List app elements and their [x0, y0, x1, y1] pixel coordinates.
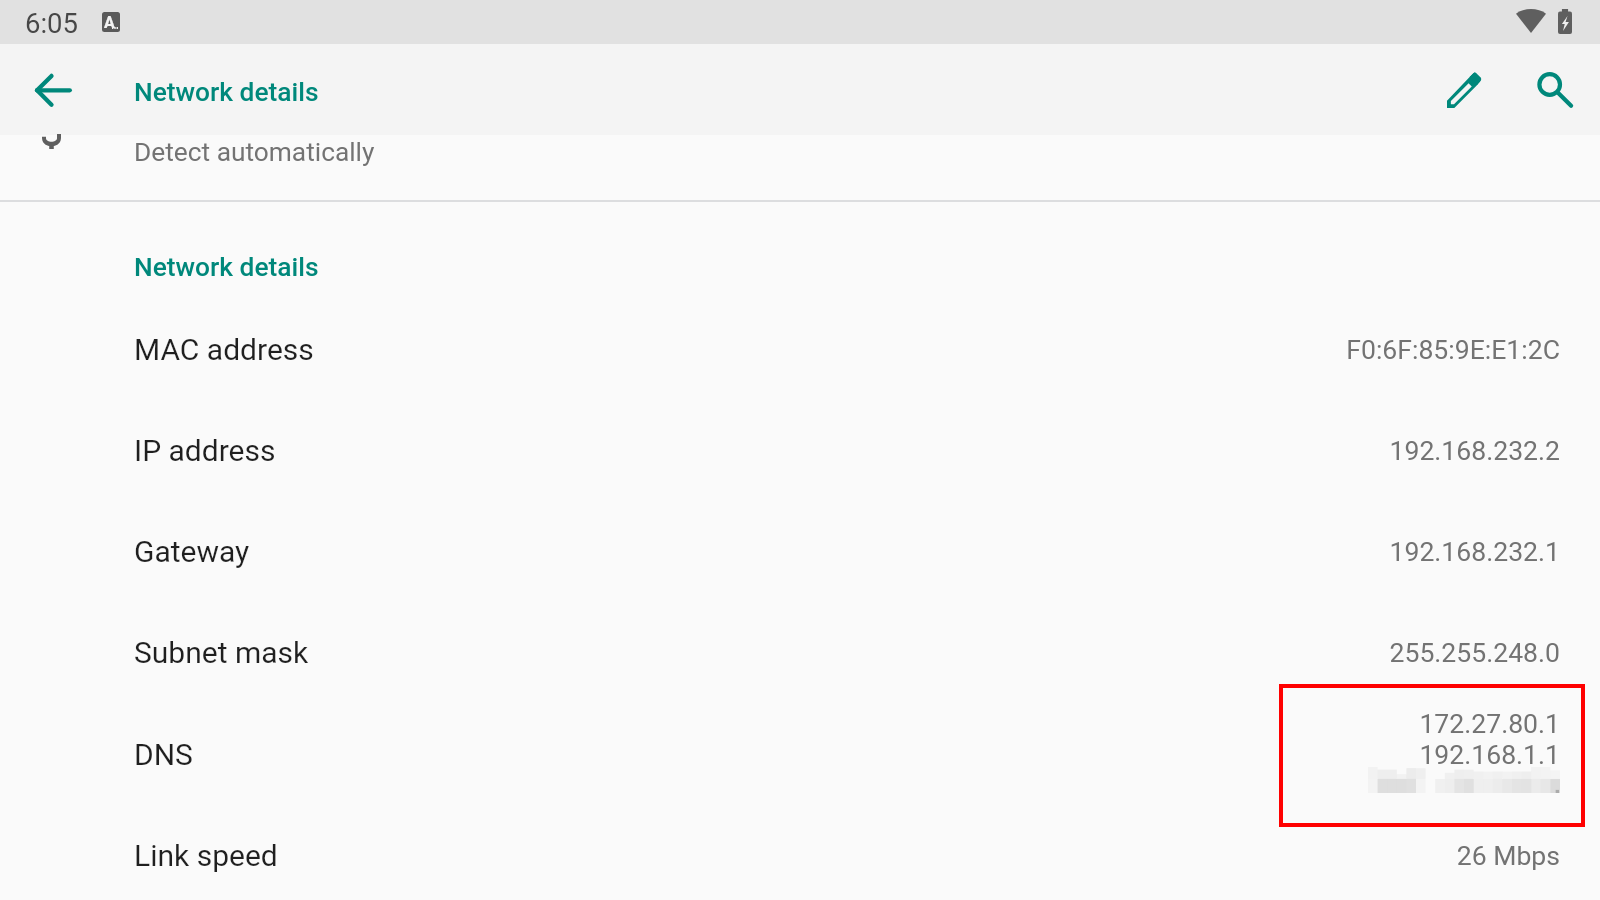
- button[interactable]: IP address: [0, 383, 1600, 484]
- button[interactable]: Gateway: [0, 484, 1600, 585]
- button[interactable]: Edit: [1430, 56, 1498, 124]
- button[interactable]: Search: [1516, 56, 1584, 124]
- staticText: Detect automatically: [134, 137, 375, 168]
- staticText: Subnet mask: [134, 635, 309, 670]
- staticText: Gateway: [134, 534, 250, 569]
- button[interactable]: Back: [19, 56, 87, 124]
- staticText: Network details: [134, 77, 319, 108]
- staticText: [1553, 770, 1560, 801]
- staticText: F0:6F:85:9E:E1:2C: [1346, 334, 1560, 365]
- staticText: Network details: [134, 252, 319, 283]
- staticText: 6:05: [25, 7, 79, 39]
- staticText: Link speed: [134, 838, 278, 873]
- staticText: 192.168.1.1: [1419, 739, 1560, 770]
- staticText: 255.255.248.0: [1389, 637, 1560, 668]
- button[interactable]: Link speed: [0, 788, 1600, 889]
- button[interactable]: Detect automatically: [0, 135, 1600, 199]
- staticText: MAC address: [134, 332, 314, 367]
- staticText: DNS: [134, 737, 193, 772]
- button[interactable]: DNS: [0, 687, 1600, 788]
- staticText: 192.168.232.2: [1389, 435, 1560, 466]
- button[interactable]: Subnet mask: [0, 585, 1600, 686]
- button[interactable]: MAC address: [0, 282, 1600, 383]
- staticText: A: [104, 13, 115, 32]
- staticText: 26 Mbps: [1456, 840, 1560, 871]
- staticText: 192.168.232.1: [1389, 536, 1560, 567]
- staticText: IP address: [134, 433, 276, 468]
- staticText: 172.27.80.1: [1419, 708, 1560, 739]
